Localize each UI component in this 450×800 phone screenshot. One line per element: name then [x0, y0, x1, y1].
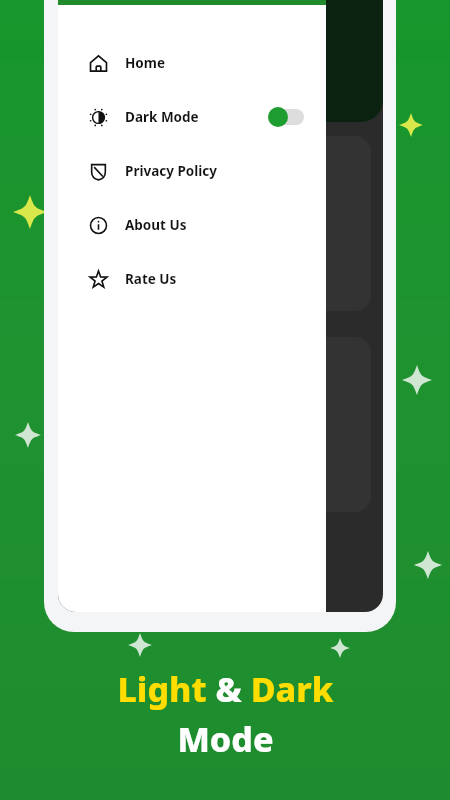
button[interactable]: About Us — [58, 198, 326, 252]
button[interactable]: Home — [58, 36, 326, 90]
button[interactable]: Rate Us — [58, 252, 326, 306]
staticText: Mode — [177, 716, 274, 762]
button[interactable]: Privacy Policy — [58, 144, 326, 198]
button[interactable]: Dark Mode — [58, 90, 326, 144]
staticText: Privacy Policy — [125, 162, 217, 180]
staticText: Light & Dark — [117, 666, 334, 712]
button[interactable]: Toggle dark mode — [268, 106, 306, 128]
staticText: Rate Us — [125, 270, 177, 288]
staticText: Dark Mode — [125, 108, 199, 126]
staticText: Home — [125, 54, 165, 72]
staticText: About Us — [125, 216, 187, 234]
